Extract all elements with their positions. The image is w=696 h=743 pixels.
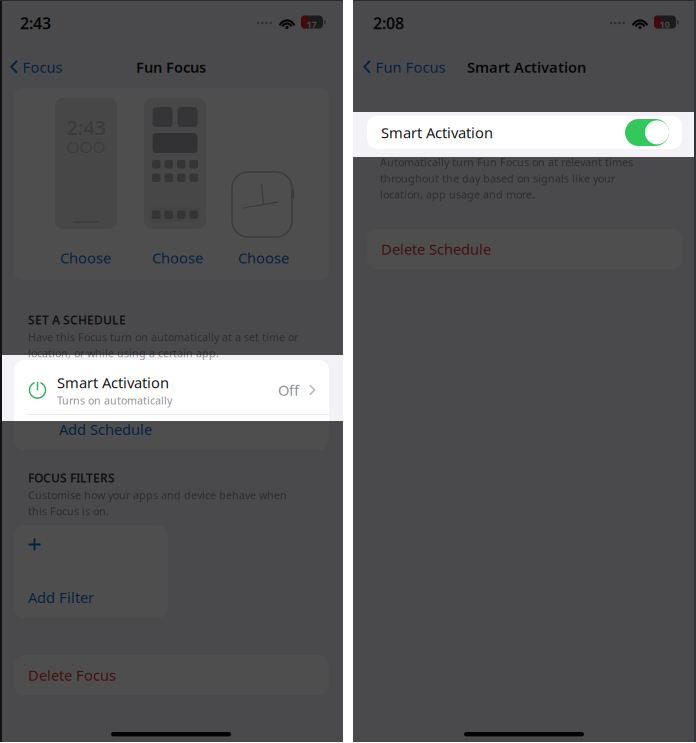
staticText: location, app usage and more. [380, 187, 535, 201]
staticText: Off [278, 380, 299, 400]
staticText: Smart Activation [467, 57, 586, 77]
staticText: Automatically turn Fun Focus on at relev… [380, 155, 633, 169]
staticText: 2:43 [66, 114, 105, 141]
staticText: Smart Activation [57, 373, 169, 392]
staticText: location, or while using a certain app. [28, 346, 219, 360]
button[interactable]: Choose [237, 248, 290, 267]
staticText: Smart Activation [381, 123, 493, 142]
button[interactable]: Smart Activation [14, 366, 329, 414]
button[interactable]: Choose [151, 248, 204, 267]
staticText: 10 [659, 18, 669, 30]
staticText: Focus [22, 57, 62, 77]
staticText: Customise how your apps and device behav… [28, 488, 287, 502]
staticText: 2:08 [373, 12, 404, 34]
staticText: SET A SCHEDULE [28, 312, 126, 328]
staticText: Choose [238, 248, 289, 267]
staticText: Turns on automatically [57, 393, 172, 407]
staticText: Delete Focus [28, 665, 116, 685]
button[interactable]: Smart Activation [367, 116, 682, 149]
staticText: 17 [306, 18, 316, 30]
button[interactable]: Delete Focus [14, 655, 329, 695]
staticText: Add Schedule [59, 420, 152, 439]
button[interactable]: Delete Schedule [367, 229, 682, 269]
staticText: throughout the day based on signals like… [380, 171, 615, 185]
staticText: Delete Schedule [381, 239, 491, 259]
staticText: Fun Focus [136, 57, 206, 77]
button[interactable]: Add Schedule [14, 415, 329, 444]
staticText: Choose [60, 248, 111, 267]
staticText: Fun Focus [375, 57, 445, 77]
button[interactable]: Focus [0, 48, 68, 86]
staticText: this Focus is on. [28, 504, 109, 518]
staticText: 2:43 [20, 12, 51, 34]
staticText: Add Filter [28, 587, 94, 607]
staticText: Choose [152, 248, 203, 267]
staticText: FOCUS FILTERS [28, 470, 115, 486]
button[interactable]: Fun Focus [353, 48, 451, 86]
staticText: Have this Focus turn on automatically at… [28, 330, 298, 344]
button[interactable]: Add Filter [14, 525, 168, 618]
button[interactable]: Choose [59, 248, 112, 267]
